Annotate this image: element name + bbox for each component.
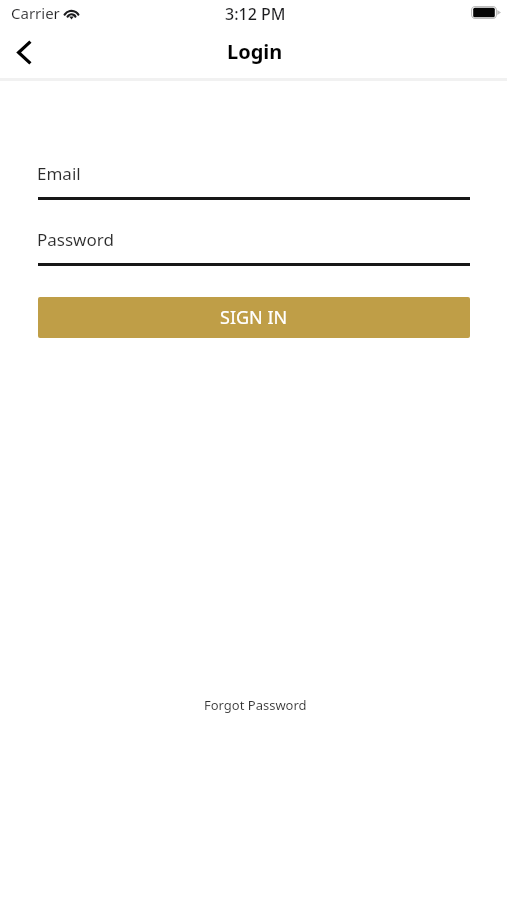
- staticText: Email: [37, 162, 81, 185]
- staticText: Carrier: [11, 3, 60, 23]
- button[interactable]: Back: [1, 29, 47, 75]
- button[interactable]: Email: [37, 160, 470, 203]
- button[interactable]: Password: [37, 226, 470, 269]
- staticText: 3:12 PM: [225, 3, 286, 25]
- button[interactable]: Forgot Password: [198, 688, 313, 722]
- staticText: Login: [227, 38, 283, 65]
- button[interactable]: SIGN IN: [38, 297, 470, 338]
- staticText: Forgot Password: [204, 696, 307, 714]
- staticText: Password: [37, 228, 114, 251]
- staticText: SIGN IN: [220, 305, 288, 330]
